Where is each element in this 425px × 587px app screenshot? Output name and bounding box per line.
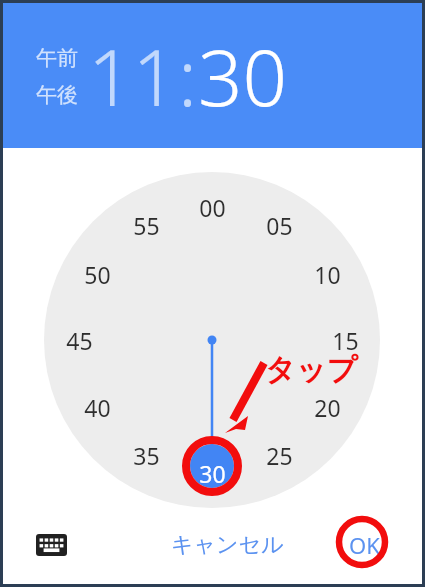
- staticText: OK: [349, 530, 380, 560]
- staticText: 25: [266, 440, 293, 471]
- staticText: 30: [199, 458, 226, 489]
- staticText: 30: [198, 23, 288, 129]
- button[interactable]: 45: [56, 323, 102, 357]
- button[interactable]: 55: [123, 208, 169, 242]
- button[interactable]: 25: [256, 438, 302, 472]
- staticText: 00: [199, 192, 226, 223]
- button[interactable]: 35: [123, 438, 169, 472]
- button[interactable]: 30: [189, 456, 235, 490]
- staticText: 午後: [36, 82, 78, 108]
- staticText: キャンセル: [171, 531, 284, 559]
- button[interactable]: キャンセル: [165, 523, 290, 567]
- button[interactable]: 05: [256, 208, 302, 242]
- staticText: 55: [133, 210, 160, 241]
- staticText: タップ: [265, 351, 358, 389]
- button[interactable]: 40: [74, 390, 120, 424]
- button[interactable]: 30: [198, 23, 288, 129]
- button[interactable]: 11: [88, 23, 178, 129]
- button[interactable]: 午後: [36, 80, 78, 110]
- staticText: 10: [314, 259, 341, 290]
- button[interactable]: 10: [304, 257, 350, 291]
- staticText: 50: [84, 259, 111, 290]
- staticText: 35: [133, 440, 160, 471]
- button[interactable]: Switch to text input: [29, 523, 73, 567]
- staticText: 45: [66, 325, 93, 356]
- button[interactable]: 20: [304, 390, 350, 424]
- button[interactable]: 00: [189, 190, 235, 224]
- staticText: 15: [332, 325, 359, 356]
- staticText: 20: [314, 392, 341, 423]
- staticText: 午前: [36, 45, 78, 71]
- staticText: 11: [88, 23, 178, 129]
- staticText: 05: [266, 210, 293, 241]
- staticText: 40: [84, 392, 111, 423]
- button[interactable]: OK: [343, 522, 386, 568]
- button[interactable]: 50: [74, 257, 120, 291]
- staticText: :: [178, 23, 198, 129]
- button[interactable]: 午前: [36, 43, 78, 73]
- button[interactable]: 15: [322, 323, 368, 357]
